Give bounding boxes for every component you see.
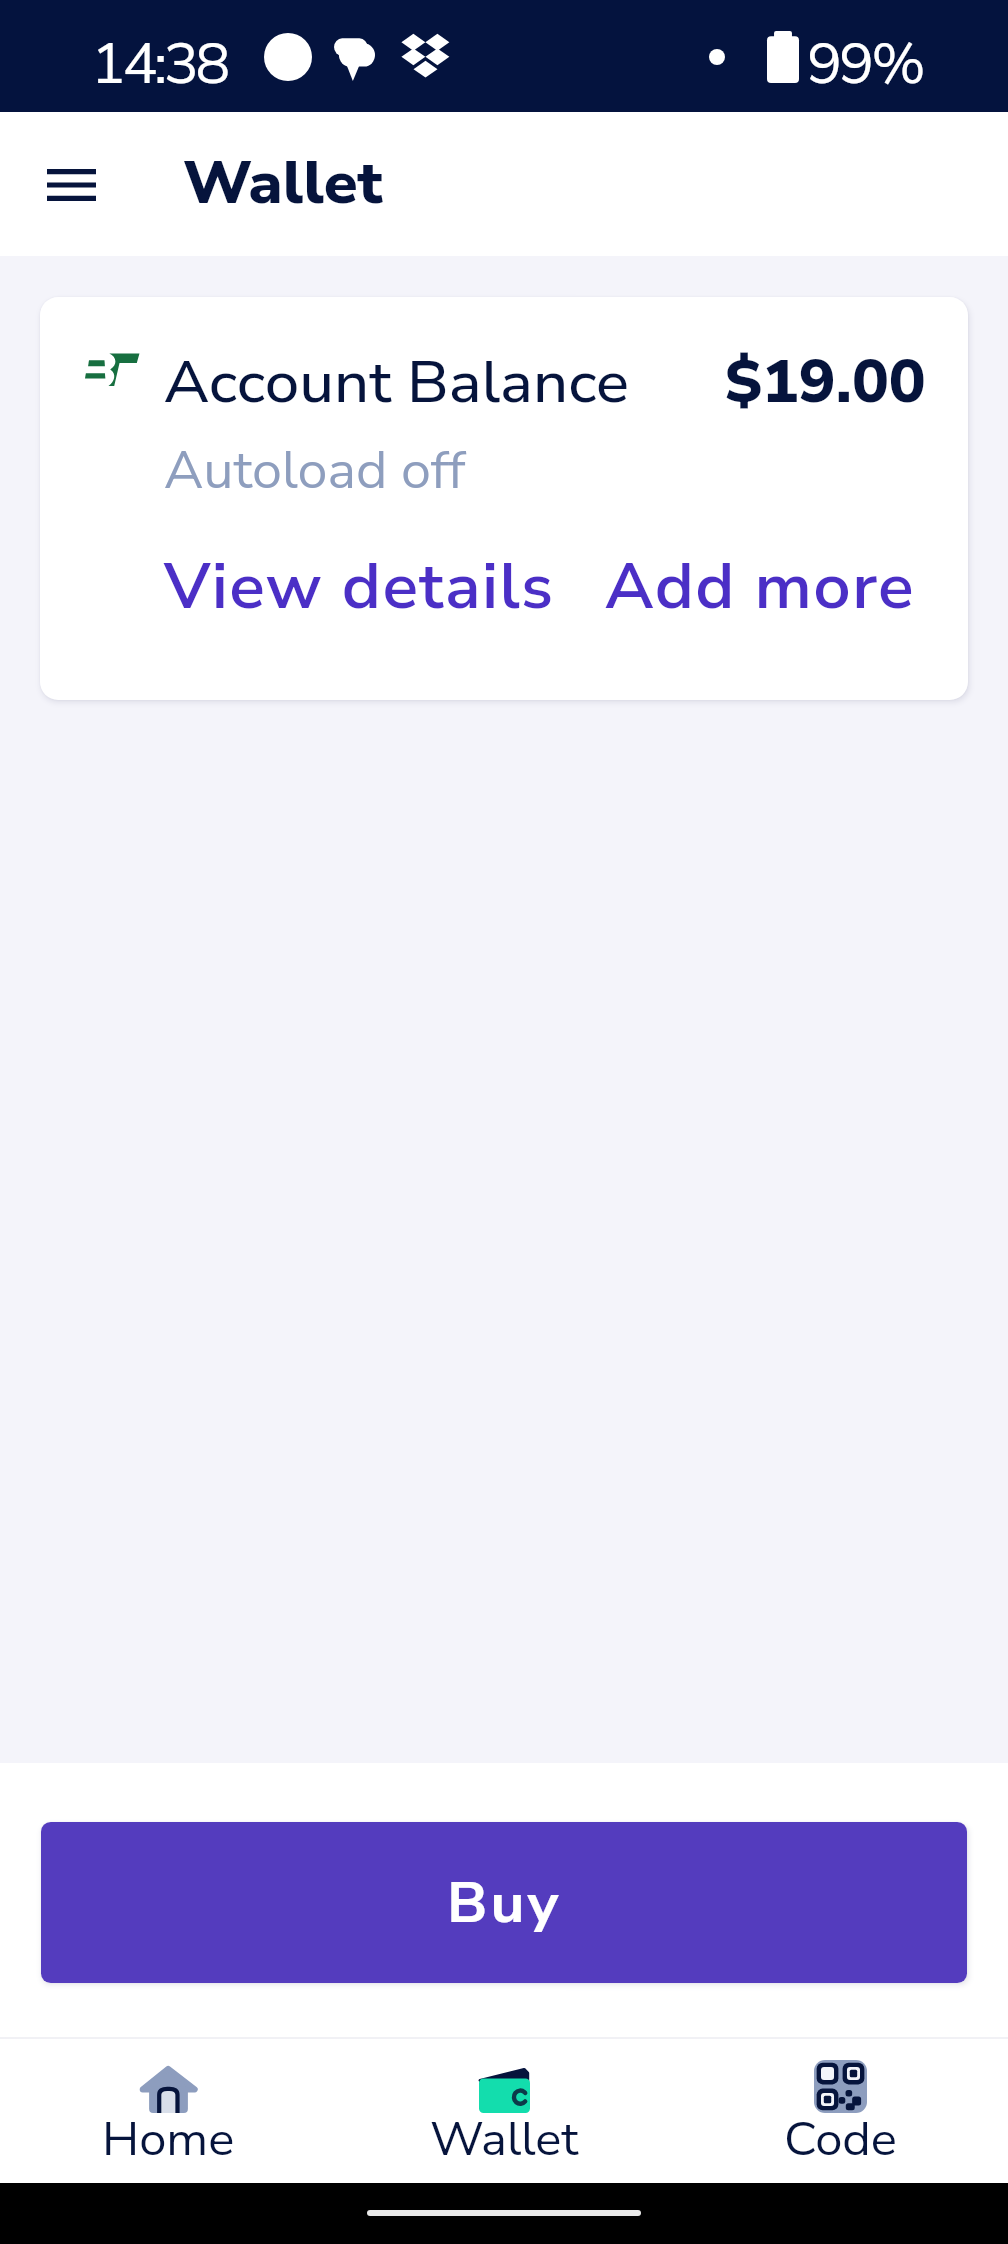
button[interactable]: View details (164, 544, 555, 630)
staticText: Wallet (430, 2108, 579, 2172)
staticText: 14:38 (91, 26, 227, 102)
staticText: Wallet (183, 144, 383, 224)
staticText: Code (784, 2108, 897, 2172)
staticText: Autoload off (164, 436, 466, 506)
button[interactable]: Buy (41, 1822, 967, 1983)
staticText: 99% (807, 26, 923, 102)
staticText: $19.00 (725, 343, 926, 423)
staticText: Home (102, 2108, 235, 2172)
staticText: Account Balance (164, 343, 629, 423)
staticText: Buy (447, 1865, 562, 1941)
button[interactable]: Code (672, 2039, 1008, 2183)
button[interactable]: Wallet (336, 2039, 672, 2183)
button[interactable]: Add more (605, 544, 915, 630)
staticText: Add more (605, 544, 915, 630)
staticText: View details (164, 544, 555, 630)
button[interactable]: Open navigation menu (47, 134, 96, 235)
button[interactable]: Home (0, 2039, 336, 2183)
